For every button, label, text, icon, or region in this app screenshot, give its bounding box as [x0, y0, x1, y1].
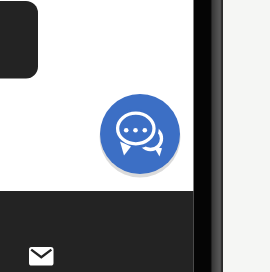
button[interactable]	[22, 238, 62, 272]
button[interactable]	[100, 94, 180, 174]
